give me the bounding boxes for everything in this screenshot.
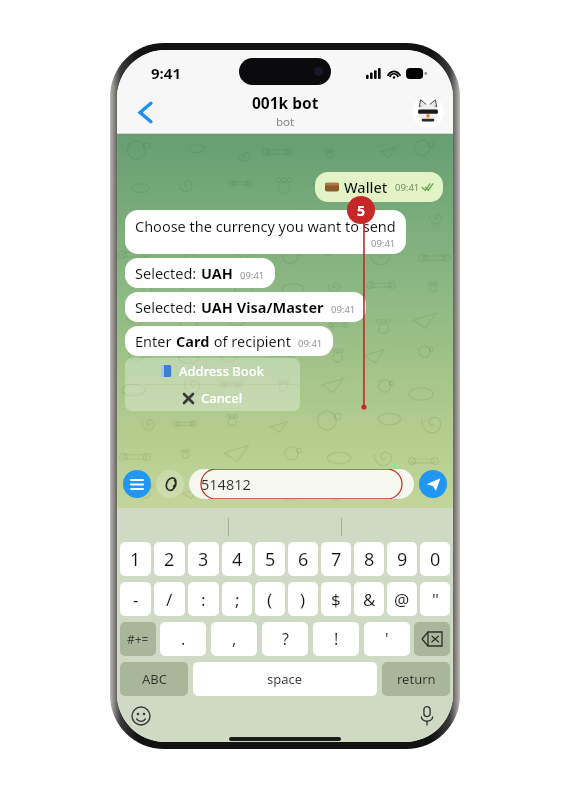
staticText: UAH: [201, 263, 233, 283]
button[interactable]: return: [382, 662, 450, 696]
staticText: #+=: [127, 631, 149, 647]
staticText: Choose the currency you want to send: [135, 216, 396, 236]
staticText: @: [394, 588, 410, 611]
button[interactable]: $: [321, 582, 351, 616]
button[interactable]: Send: [419, 470, 447, 498]
button[interactable]: 0: [420, 542, 450, 576]
button[interactable]: 514812: [189, 469, 414, 499]
staticText: ): [300, 588, 306, 611]
button[interactable]: ,: [211, 622, 257, 656]
button[interactable]: ): [288, 582, 318, 616]
staticText: Wallet: [344, 177, 388, 197]
button[interactable]: Wallet: [315, 172, 443, 202]
button[interactable]: Choose the currency you want to send: [125, 210, 406, 254]
staticText: 09:41: [331, 303, 356, 316]
staticText: ABC: [142, 670, 167, 688]
staticText: Enter: [135, 331, 176, 351]
staticText: Address Book: [179, 362, 265, 380]
staticText: :: [201, 588, 206, 611]
staticText: &: [363, 588, 376, 611]
staticText: 001k bot: [252, 92, 319, 113]
button[interactable]: &: [354, 582, 384, 616]
staticText: ,: [232, 628, 237, 650]
button[interactable]: .: [160, 622, 206, 656]
staticText: 9:41: [151, 63, 181, 83]
staticText: /: [166, 588, 173, 611]
button[interactable]: ;: [222, 582, 252, 616]
staticText: 3: [198, 547, 209, 572]
button[interactable]: Attach: [156, 470, 184, 498]
staticText: 5: [357, 201, 366, 220]
button[interactable]: (: [255, 582, 285, 616]
staticText: 09:41: [240, 269, 265, 282]
staticText: of recipient: [210, 331, 291, 351]
button[interactable]: @: [387, 582, 417, 616]
staticText: 8: [364, 547, 375, 572]
button[interactable]: Bot menu: [123, 470, 151, 498]
button[interactable]: -: [120, 582, 151, 616]
staticText: ;: [235, 588, 240, 611]
staticText: bot: [276, 114, 295, 130]
button[interactable]: Address Book: [125, 358, 300, 384]
button[interactable]: 3: [188, 542, 219, 576]
button[interactable]: 1: [120, 542, 151, 576]
button[interactable]: 4: [222, 542, 252, 576]
staticText: $: [331, 588, 341, 611]
staticText: 5: [265, 547, 276, 572]
staticText: ": [432, 588, 439, 611]
button[interactable]: space: [193, 662, 377, 696]
staticText: -: [133, 588, 139, 611]
staticText: .: [181, 628, 186, 650]
staticText: 6: [298, 547, 309, 572]
staticText: 9: [397, 547, 408, 572]
staticText: !: [334, 628, 339, 650]
button[interactable]: 7: [321, 542, 351, 576]
staticText: Selected:: [135, 297, 201, 317]
button[interactable]: Cancel: [125, 385, 300, 411]
button[interactable]: 5: [255, 542, 285, 576]
staticText: return: [397, 670, 436, 688]
button[interactable]: Backspace: [414, 622, 450, 656]
button[interactable]: Dictate: [415, 704, 439, 728]
button[interactable]: Enter: [125, 326, 333, 356]
button[interactable]: !: [313, 622, 359, 656]
staticText: 0: [430, 547, 441, 572]
button[interactable]: /: [154, 582, 185, 616]
button[interactable]: ": [420, 582, 450, 616]
staticText: Card: [176, 331, 210, 351]
button[interactable]: Back: [127, 94, 163, 130]
staticText: 7: [331, 547, 342, 572]
staticText: 09:41: [395, 181, 420, 194]
button[interactable]: Selected:: [125, 258, 275, 288]
button[interactable]: ?: [262, 622, 308, 656]
button[interactable]: 9: [387, 542, 417, 576]
button[interactable]: 8: [354, 542, 384, 576]
staticText: (: [267, 588, 273, 611]
staticText: 2: [164, 547, 175, 572]
button[interactable]: :: [188, 582, 219, 616]
staticText: UAH Visa/Master: [201, 297, 324, 317]
button[interactable]: ABC: [120, 662, 188, 696]
staticText: space: [267, 670, 303, 688]
staticText: Selected:: [135, 263, 201, 283]
button[interactable]: ': [364, 622, 410, 656]
button[interactable]: Profile: [412, 96, 444, 128]
staticText: 4: [232, 547, 243, 572]
button[interactable]: #+=: [120, 622, 156, 656]
staticText: ?: [282, 628, 289, 650]
staticText: Cancel: [201, 389, 243, 407]
button[interactable]: Emoji: [129, 704, 153, 728]
staticText: 514812: [201, 474, 251, 494]
button[interactable]: Selected:: [125, 292, 366, 322]
staticText: 1: [130, 547, 141, 572]
staticText: 09:41: [298, 337, 323, 350]
staticText: ': [385, 628, 389, 650]
button[interactable]: 2: [154, 542, 185, 576]
staticText: 09:41: [371, 237, 396, 250]
button[interactable]: 6: [288, 542, 318, 576]
